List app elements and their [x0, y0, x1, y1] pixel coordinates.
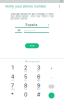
button[interactable]: 5 [19, 73, 32, 82]
staticText: España [25, 23, 37, 27]
staticText: 3 [37, 64, 40, 71]
button[interactable]: 7 [6, 82, 19, 91]
staticText: 0 [24, 91, 27, 98]
staticText: + [50, 76, 52, 79]
button[interactable]: 2 [19, 64, 32, 73]
staticText: +34 [17, 29, 20, 32]
button[interactable]: NEXT [25, 43, 39, 48]
staticText: 1 [11, 64, 13, 71]
staticText: * [11, 91, 14, 98]
staticText: TUV [24, 89, 27, 91]
button[interactable]: 1 [6, 64, 19, 73]
button[interactable]: Options [45, 64, 58, 73]
button[interactable]: 4 [6, 73, 19, 82]
button[interactable]: 0 [19, 91, 32, 100]
staticText: phone number [24, 29, 36, 32]
staticText: 9 [37, 82, 40, 89]
button[interactable]: 8 [19, 82, 32, 91]
staticText: # [37, 91, 40, 98]
staticText: 5 [24, 73, 27, 80]
button[interactable]: Plus [45, 73, 58, 82]
staticText: DEF [37, 71, 40, 73]
staticText: 4 [11, 73, 14, 80]
button[interactable]: More options [55, 3, 64, 10]
button[interactable]: Backspace [45, 82, 58, 91]
staticText: 9:41 [60, 0, 63, 3]
staticText: Número personal [25, 60, 39, 63]
staticText: + [25, 98, 26, 100]
staticText: 7 [11, 82, 14, 89]
staticText: GHI [11, 80, 13, 82]
button[interactable]: # [32, 91, 45, 100]
staticText: PQRS [10, 89, 14, 91]
staticText: ABC [24, 71, 27, 73]
staticText: 6 [37, 73, 40, 80]
staticText: 2 [24, 64, 27, 71]
button[interactable]: España [15, 23, 49, 27]
button[interactable]: * [6, 91, 19, 100]
button[interactable]: Done [45, 91, 58, 100]
staticText: WhatsApp will send an SMS message to ver… [10, 13, 53, 20]
button[interactable]: 9 [32, 82, 45, 91]
staticText: MNO [37, 80, 40, 82]
button[interactable]: 6 [32, 73, 45, 82]
staticText: NEXT [29, 44, 34, 47]
button[interactable]: 3 [32, 64, 45, 73]
staticText: WXYZ [36, 89, 40, 91]
staticText: 8 [24, 82, 27, 89]
staticText: Verify your phone number [5, 5, 46, 8]
staticText: JKL [24, 80, 27, 82]
